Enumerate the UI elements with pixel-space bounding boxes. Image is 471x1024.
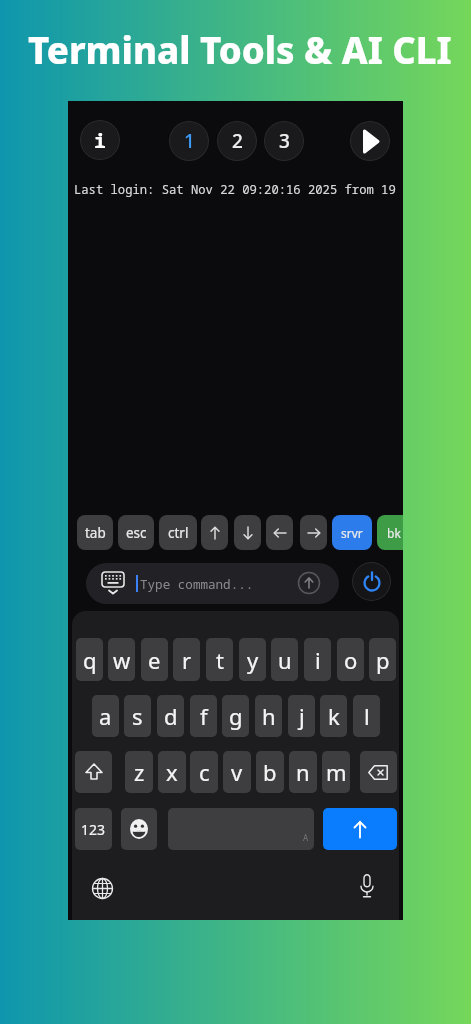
- staticText: f: [200, 701, 208, 731]
- staticText: a: [99, 701, 112, 731]
- button[interactable]: r: [173, 638, 200, 681]
- button[interactable]: f: [190, 695, 217, 737]
- button[interactable]: o: [337, 638, 364, 681]
- staticText: A: [303, 832, 309, 843]
- button[interactable]: u: [271, 638, 298, 681]
- button[interactable]: Type command...: [86, 563, 339, 604]
- button[interactable]: j: [288, 695, 315, 737]
- button[interactable]: [91, 877, 113, 899]
- staticText: t: [216, 645, 224, 675]
- button[interactable]: e: [141, 638, 168, 681]
- staticText: n: [296, 757, 310, 787]
- staticText: 1: [184, 128, 195, 154]
- button[interactable]: i: [304, 638, 331, 681]
- button[interactable]: w: [108, 638, 135, 681]
- staticText: q: [83, 645, 97, 675]
- staticText: esc: [126, 524, 147, 542]
- staticText: l: [364, 701, 370, 731]
- button[interactable]: [350, 121, 390, 161]
- staticText: c: [199, 757, 210, 787]
- staticText: srvr: [341, 525, 363, 541]
- button[interactable]: t: [206, 638, 233, 681]
- button[interactable]: 123: [75, 808, 112, 850]
- staticText: Type command...: [140, 576, 254, 593]
- staticText: i: [315, 645, 321, 675]
- button[interactable]: c: [190, 751, 218, 793]
- button[interactable]: 2: [217, 121, 257, 161]
- button[interactable]: i: [80, 120, 120, 160]
- button[interactable]: l: [353, 695, 380, 737]
- staticText: m: [326, 757, 347, 787]
- button[interactable]: z: [125, 751, 153, 793]
- button[interactable]: m: [322, 751, 350, 793]
- button[interactable]: ctrl: [159, 515, 197, 550]
- button[interactable]: bk: [377, 515, 403, 550]
- staticText: o: [344, 645, 358, 675]
- staticText: s: [132, 701, 143, 731]
- button[interactable]: [234, 515, 261, 550]
- staticText: d: [164, 701, 178, 731]
- staticText: ctrl: [168, 524, 189, 542]
- button[interactable]: [266, 515, 293, 550]
- button[interactable]: h: [255, 695, 282, 737]
- button[interactable]: v: [223, 751, 251, 793]
- staticText: h: [262, 701, 276, 731]
- button[interactable]: n: [289, 751, 317, 793]
- button[interactable]: [356, 873, 378, 899]
- button[interactable]: [352, 562, 391, 601]
- button[interactable]: x: [158, 751, 186, 793]
- button[interactable]: tab: [77, 515, 113, 550]
- button[interactable]: srvr: [332, 515, 372, 550]
- button[interactable]: g: [222, 695, 249, 737]
- staticText: 3: [279, 128, 290, 154]
- button[interactable]: b: [256, 751, 284, 793]
- button[interactable]: q: [76, 638, 103, 681]
- button[interactable]: 3: [264, 121, 304, 161]
- staticText: j: [299, 701, 305, 731]
- staticText: bk: [387, 525, 401, 541]
- button[interactable]: k: [320, 695, 347, 737]
- button[interactable]: [75, 751, 112, 793]
- button[interactable]: y: [239, 638, 266, 681]
- staticText: 2: [232, 128, 243, 154]
- button[interactable]: [323, 808, 397, 850]
- staticText: 123: [81, 820, 106, 839]
- staticText: r: [182, 645, 192, 675]
- staticText: Terminal Tools & AI CLI: [28, 25, 452, 75]
- button[interactable]: d: [157, 695, 184, 737]
- staticText: e: [148, 645, 161, 675]
- staticText: w: [113, 645, 131, 675]
- button[interactable]: s: [124, 695, 151, 737]
- button[interactable]: a: [92, 695, 119, 737]
- button[interactable]: [300, 515, 327, 550]
- staticText: z: [134, 757, 145, 787]
- staticText: y: [247, 645, 259, 675]
- staticText: u: [278, 645, 292, 675]
- staticText: tab: [85, 524, 106, 542]
- staticText: v: [231, 757, 243, 787]
- staticText: b: [263, 757, 277, 787]
- staticText: Last login: Sat Nov 22 09:20:16 2025 fro…: [74, 181, 396, 198]
- staticText: g: [229, 701, 243, 731]
- button[interactable]: [121, 808, 157, 850]
- button[interactable]: p: [369, 638, 396, 681]
- button[interactable]: [360, 751, 397, 793]
- button[interactable]: [201, 515, 228, 550]
- staticText: x: [166, 757, 178, 787]
- button[interactable]: esc: [118, 515, 154, 550]
- staticText: i: [94, 127, 106, 154]
- button[interactable]: 1: [169, 121, 209, 161]
- staticText: p: [376, 645, 390, 675]
- staticText: k: [328, 701, 340, 731]
